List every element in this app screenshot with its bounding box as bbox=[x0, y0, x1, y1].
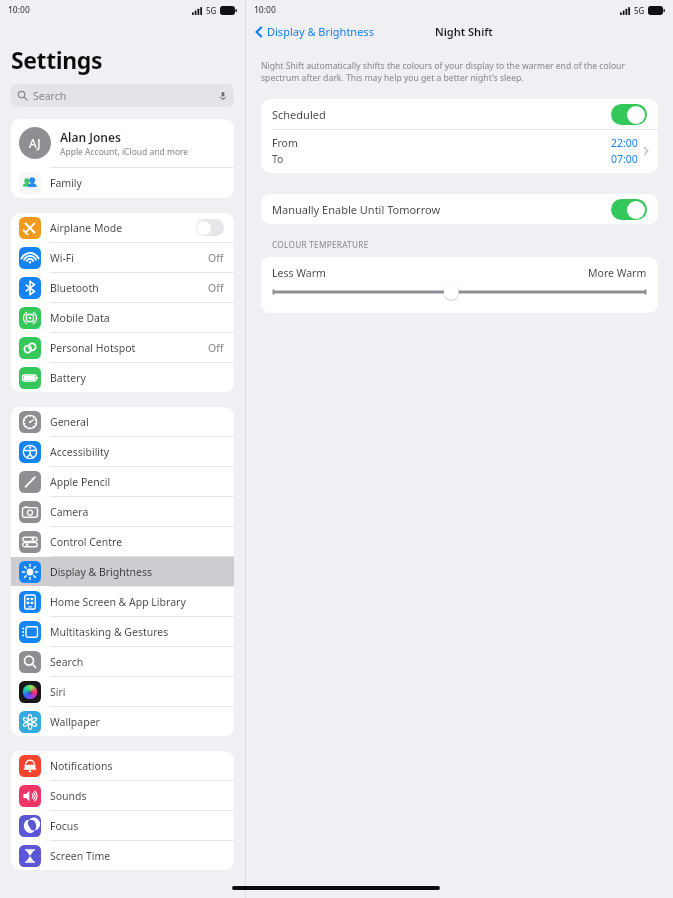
staticText: 10:00 bbox=[8, 4, 30, 16]
staticText: Apple Account, iCloud and more bbox=[60, 146, 189, 158]
button[interactable]: Scheduled bbox=[261, 99, 658, 129]
button[interactable]: Display & Brightness bbox=[246, 22, 380, 41]
button[interactable]: Battery bbox=[11, 363, 234, 392]
staticText: Wallpaper bbox=[50, 715, 224, 729]
button[interactable]: Family bbox=[11, 168, 234, 198]
button[interactable]: Wi-Fi bbox=[11, 243, 234, 272]
staticText: Mobile Data bbox=[50, 311, 224, 325]
staticText: Settings bbox=[11, 44, 103, 75]
staticText: Home Screen & App Library bbox=[50, 595, 224, 609]
staticText: Multitasking & Gestures bbox=[50, 625, 224, 639]
button[interactable]: From bbox=[261, 130, 658, 173]
staticText: Focus bbox=[50, 819, 224, 833]
staticText: Search bbox=[50, 655, 224, 669]
staticText: Off bbox=[208, 251, 224, 265]
button[interactable]: Personal Hotspot bbox=[11, 333, 234, 362]
button[interactable]: Siri bbox=[11, 677, 234, 706]
staticText: 22:00 bbox=[611, 136, 638, 150]
button[interactable]: Mobile Data bbox=[11, 303, 234, 332]
button[interactable]: Manually Enable Until Tomorrow bbox=[261, 194, 658, 224]
staticText: Alan Jones bbox=[60, 129, 121, 145]
staticText: Display & Brightness bbox=[50, 565, 224, 579]
staticText: Manually Enable Until Tomorrow bbox=[272, 202, 611, 217]
button[interactable]: Search bbox=[11, 647, 234, 676]
staticText: 5G bbox=[634, 5, 645, 16]
button[interactable]: Toggle off bbox=[196, 219, 224, 236]
button[interactable]: Camera bbox=[11, 497, 234, 526]
staticText: Notifications bbox=[50, 759, 224, 773]
button[interactable]: Home Screen & App Library bbox=[11, 587, 234, 616]
staticText: Airplane Mode bbox=[50, 221, 196, 235]
staticText: 5G bbox=[206, 5, 217, 16]
staticText: Sounds bbox=[50, 789, 224, 803]
button[interactable]: Focus bbox=[11, 811, 234, 840]
staticText: 10:00 bbox=[254, 4, 276, 16]
button[interactable]: Switch on bbox=[611, 104, 647, 125]
staticText: Search bbox=[33, 89, 218, 103]
button[interactable]: Bluetooth bbox=[11, 273, 234, 302]
button[interactable]: Accessibility bbox=[11, 437, 234, 466]
staticText: Less Warm bbox=[272, 266, 588, 280]
staticText: Camera bbox=[50, 505, 224, 519]
button[interactable]: Multitasking & Gestures bbox=[11, 617, 234, 646]
staticText: Control Centre bbox=[50, 535, 224, 549]
staticText: Wi-Fi bbox=[50, 251, 208, 265]
staticText: To bbox=[272, 152, 284, 166]
staticText: More Warm bbox=[588, 266, 647, 280]
staticText: 07:00 bbox=[611, 152, 638, 166]
staticText: Accessibility bbox=[50, 445, 224, 459]
staticText: Apple Pencil bbox=[50, 475, 224, 489]
staticText: Bluetooth bbox=[50, 281, 208, 295]
staticText: Scheduled bbox=[272, 107, 611, 122]
staticText: Battery bbox=[50, 371, 224, 385]
button[interactable]: Apple Pencil bbox=[11, 467, 234, 496]
other: Voice search bbox=[218, 91, 228, 101]
button[interactable]: Notifications bbox=[11, 751, 234, 780]
staticText: Personal Hotspot bbox=[50, 341, 208, 355]
staticText: Family bbox=[50, 176, 82, 190]
staticText: AJ bbox=[29, 135, 41, 151]
button[interactable]: Display & Brightness bbox=[11, 557, 234, 586]
staticText: Siri bbox=[50, 685, 224, 699]
staticText: Screen Time bbox=[50, 849, 224, 863]
staticText: Night Shift automatically shifts the col… bbox=[261, 60, 658, 83]
button[interactable]: Wallpaper bbox=[11, 707, 234, 736]
button[interactable]: Switch on bbox=[611, 199, 647, 220]
button[interactable]: Search bbox=[11, 84, 234, 107]
staticText: From bbox=[272, 136, 298, 150]
button[interactable]: Sounds bbox=[11, 781, 234, 810]
staticText: Off bbox=[208, 341, 224, 355]
button[interactable]: General bbox=[11, 407, 234, 436]
button[interactable]: Control Centre bbox=[11, 527, 234, 556]
staticText: Display & Brightness bbox=[267, 24, 374, 39]
button[interactable]: Airplane Mode bbox=[11, 213, 234, 242]
button[interactable]: Colour temperature slider bbox=[272, 284, 647, 300]
staticText: General bbox=[50, 415, 224, 429]
staticText: Night Shift bbox=[435, 24, 493, 39]
staticText: Off bbox=[208, 281, 224, 295]
button[interactable]: Screen Time bbox=[11, 841, 234, 870]
button[interactable]: AJ bbox=[11, 119, 234, 167]
staticText: COLOUR TEMPERATURE bbox=[272, 239, 369, 250]
